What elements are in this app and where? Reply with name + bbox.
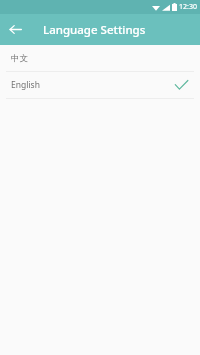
staticText: 中文 bbox=[11, 53, 28, 64]
button[interactable]: English bbox=[0, 72, 200, 98]
staticText: 12:30 bbox=[179, 2, 197, 12]
staticText: English bbox=[11, 79, 40, 91]
button[interactable]: 中文 bbox=[0, 45, 200, 71]
button[interactable]: Back bbox=[0, 14, 31, 45]
staticText: Language Settings bbox=[43, 22, 146, 38]
